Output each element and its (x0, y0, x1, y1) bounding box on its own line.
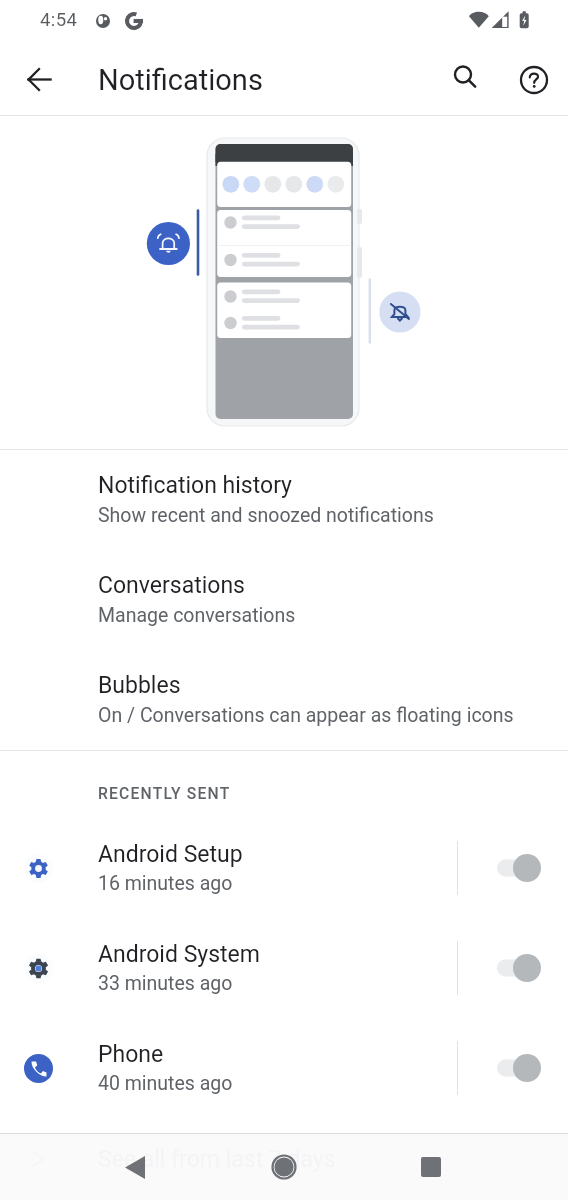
button[interactable]: Android System (0, 918, 568, 1018)
staticText: RECENTLY SENT (98, 784, 231, 802)
button[interactable]: Home (260, 1143, 308, 1191)
button[interactable]: Toggle notifications (458, 1018, 568, 1118)
button[interactable]: Toggle notifications (458, 918, 568, 1018)
button[interactable]: Back (111, 1143, 159, 1191)
staticText: Conversations (98, 572, 245, 599)
staticText: Android System (98, 941, 260, 968)
staticText: Phone (98, 1041, 164, 1068)
button[interactable]: Android Setup (0, 818, 568, 918)
button[interactable]: Recent apps (407, 1143, 455, 1191)
staticText: Show recent and snoozed notifications (98, 504, 434, 527)
staticText: Manage conversations (98, 604, 296, 627)
button[interactable]: Bubbles (0, 650, 568, 750)
button[interactable]: Conversations (0, 550, 568, 650)
button[interactable]: Back (15, 56, 63, 104)
staticText: 33 minutes ago (98, 972, 233, 995)
button[interactable]: Phone (0, 1018, 568, 1118)
staticText: 40 minutes ago (98, 1072, 233, 1095)
staticText: Notifications (98, 63, 263, 97)
staticText: Notification history (98, 472, 293, 499)
button[interactable]: See all from last 7 days (0, 1118, 568, 1200)
button[interactable]: Search (442, 56, 490, 104)
staticText: 4:54 (40, 9, 78, 31)
button[interactable]: Toggle notifications (458, 818, 568, 918)
button[interactable]: Help (510, 56, 558, 104)
staticText: On / Conversations can appear as floatin… (98, 704, 514, 727)
staticText: Android Setup (98, 841, 243, 868)
staticText: Bubbles (98, 672, 181, 699)
staticText: 16 minutes ago (98, 872, 233, 895)
button[interactable]: Notification history (0, 450, 568, 550)
staticText: See all from last 7 days (98, 1146, 336, 1173)
